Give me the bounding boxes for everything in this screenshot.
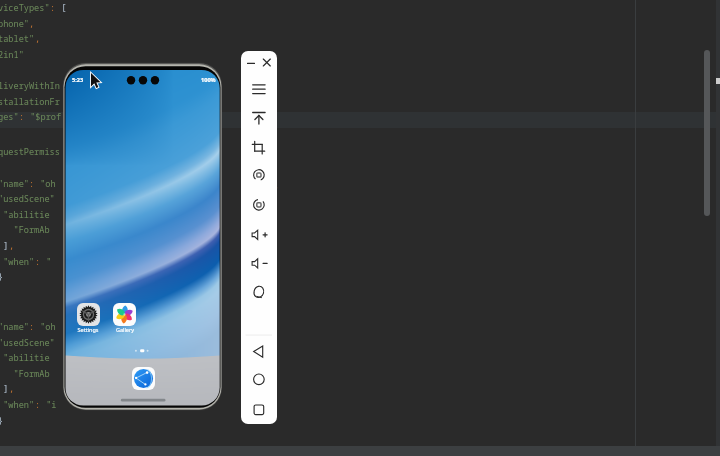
button[interactable]: Gallery: [113, 303, 136, 326]
staticText: ]: [0, 383, 9, 395]
staticText: "name": [0, 321, 29, 333]
staticText: 100%: [201, 76, 216, 84]
staticText: :: [29, 321, 35, 333]
staticText: 5:23: [72, 76, 84, 84]
staticText: :: [19, 111, 25, 123]
button[interactable]: Browser: [132, 367, 155, 390]
staticText: [: [56, 2, 67, 14]
staticText: :: [35, 399, 41, 411]
staticText: "usedScene": [0, 337, 55, 349]
button[interactable]: Settings: [77, 303, 100, 326]
staticText: "oh: [35, 178, 56, 190]
staticText: ,: [29, 18, 35, 30]
staticText: liveryWithIn: [0, 80, 60, 92]
staticText: "abilitie: [0, 209, 50, 221]
staticText: :: [50, 2, 56, 14]
staticText: "when": [0, 399, 35, 411]
staticText: ,: [35, 33, 41, 45]
staticText: "name": [0, 178, 29, 190]
staticText: ]: [0, 240, 9, 252]
staticText: questPermiss: [0, 146, 60, 158]
staticText: Gallery: [111, 326, 139, 333]
staticText: :: [35, 256, 41, 268]
staticText: ": [41, 256, 52, 268]
staticText: "oh: [35, 321, 56, 333]
staticText: ,: [9, 383, 15, 395]
staticText: ges": [0, 111, 19, 123]
staticText: ,: [274, 180, 280, 192]
staticText: "FormAb: [0, 368, 50, 380]
staticText: "abilitie: [0, 352, 50, 364]
staticText: ,: [9, 240, 15, 252]
staticText: 2in1": [0, 49, 24, 61]
staticText: Settings: [74, 326, 102, 333]
staticText: phone": [0, 18, 29, 30]
staticText: }: [0, 415, 4, 427]
staticText: stallationFr: [0, 96, 60, 108]
staticText: "$prof: [25, 111, 62, 123]
staticText: "when": [0, 256, 35, 268]
staticText: viceTypes": [0, 2, 50, 14]
staticText: "usedScene": [0, 193, 55, 205]
staticText: "i: [41, 399, 57, 411]
staticText: :: [29, 178, 35, 190]
staticText: tablet": [0, 33, 35, 45]
staticText: }: [0, 271, 4, 283]
staticText: "FormAb: [0, 224, 50, 236]
